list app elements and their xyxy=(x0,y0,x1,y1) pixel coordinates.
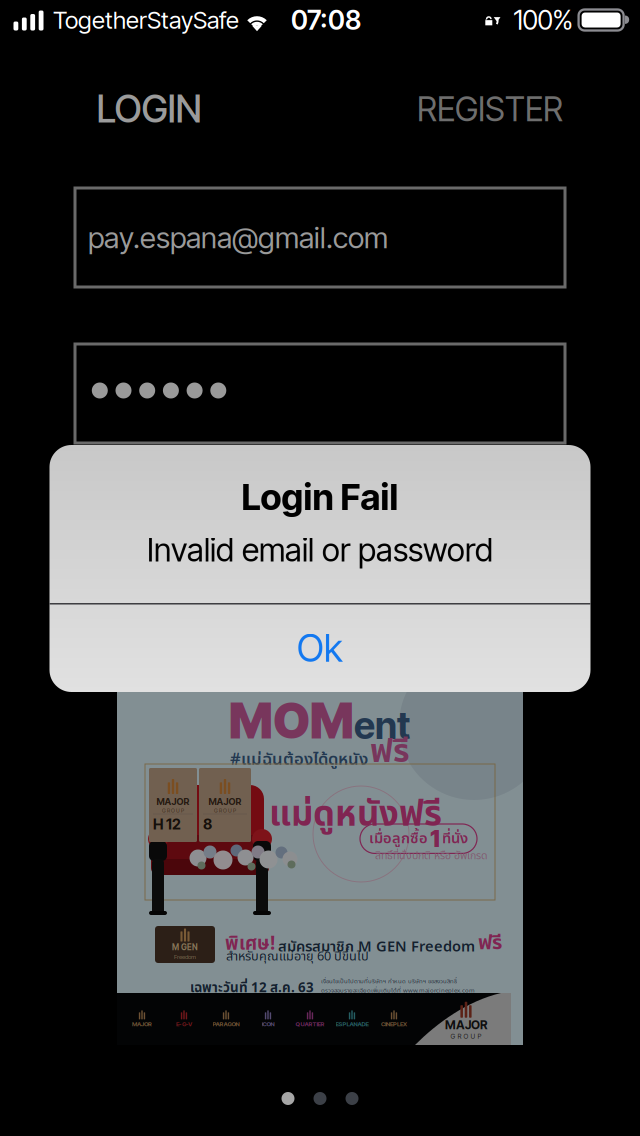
staticText: 1 xyxy=(430,825,440,852)
staticText: MAJOR xyxy=(156,796,189,807)
staticText: สำหรับคุณแม่อายุ 60 ปีขึ้นไป xyxy=(226,947,369,966)
staticText: REGISTER xyxy=(417,89,563,129)
button[interactable]: LOGIN xyxy=(47,84,251,134)
staticText: ICON xyxy=(261,1020,274,1028)
staticText: G R O U P xyxy=(450,1032,481,1040)
staticText: Login Fail xyxy=(241,475,398,519)
staticText: TogetherStaySafe xyxy=(53,5,239,34)
button[interactable]: Ok xyxy=(49,604,590,692)
staticText: pay.espana@gmail.com xyxy=(88,220,388,255)
staticText: H 12 xyxy=(153,815,181,833)
staticText: เมื่อลูกซื้อ xyxy=(369,828,428,850)
staticText: QUARTIER xyxy=(295,1020,324,1028)
staticText: M GEN xyxy=(172,942,198,952)
staticText: 100% xyxy=(514,4,573,36)
staticText: ESPLANADE xyxy=(335,1020,368,1028)
staticText: 07:08 xyxy=(291,4,361,36)
staticText: ent xyxy=(354,703,410,748)
staticText: PARAGON xyxy=(212,1020,239,1028)
staticText: ฟรี xyxy=(478,928,502,958)
staticText: LOGIN xyxy=(96,86,201,132)
staticText: 8 xyxy=(203,815,212,833)
staticText: สิทธิ์ที่นั่งปกติ หรือ อัพเกรด xyxy=(375,848,488,864)
staticText: MAJOR xyxy=(132,1020,152,1028)
staticText: MOM xyxy=(229,692,354,750)
staticText: MAJOR xyxy=(208,796,241,807)
staticText: พิเศษ! xyxy=(225,930,275,958)
staticText: ตรวจสอบรายละเอียดเพิ่มเติมได้ที่ www.maj… xyxy=(321,986,475,995)
staticText: เฉพาะวันที่ 12 ส.ค. 63 xyxy=(190,978,314,998)
staticText: ฟรี xyxy=(370,728,410,776)
staticText: #แม่ฉันต้องได้ดูหนัง xyxy=(230,747,368,772)
staticText: สมัครสมาชิก M GEN Freedom xyxy=(278,936,475,958)
staticText: E-G-V xyxy=(176,1020,192,1028)
staticText: G R O U P xyxy=(214,807,236,814)
staticText: เงื่อนไขเป็นไปตามที่บริษัทฯ กำหนด บริษัท… xyxy=(321,977,457,986)
staticText: ที่นั่ง xyxy=(442,828,468,850)
staticText: G R O U P xyxy=(162,807,184,814)
button[interactable]: REGISTER xyxy=(388,84,592,134)
staticText: Freedom xyxy=(174,953,196,960)
staticText: CINEPLEX xyxy=(381,1020,407,1028)
staticText: MAJOR xyxy=(445,1018,487,1032)
staticText: Invalid email or password xyxy=(147,531,493,569)
staticText: Ok xyxy=(297,626,343,671)
staticText: แม่ดูหนังฟรี xyxy=(269,789,442,841)
